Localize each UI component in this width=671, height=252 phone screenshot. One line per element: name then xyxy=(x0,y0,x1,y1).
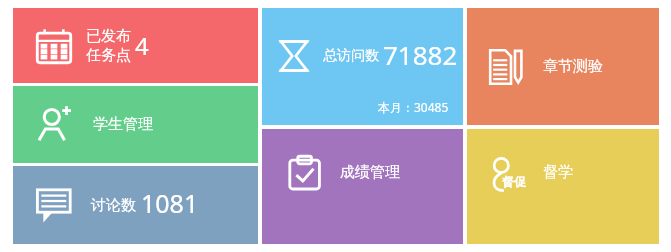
button[interactable]: 章节测验 xyxy=(467,8,659,125)
staticText: 督促 xyxy=(502,174,526,189)
staticText: 总访问数 xyxy=(323,47,379,65)
staticText: 督学 xyxy=(543,163,573,182)
button[interactable]: 成绩管理 xyxy=(262,129,463,244)
staticText: 1081 xyxy=(141,186,199,220)
button[interactable]: 总访问数 71882 本月 30485 xyxy=(262,8,463,125)
staticText: 任务点 xyxy=(86,46,131,65)
staticText: 本月：30485 xyxy=(378,99,449,115)
button[interactable]: 督学 xyxy=(467,129,659,244)
staticText: 已发布 xyxy=(86,27,131,46)
staticText: 成绩管理 xyxy=(340,163,400,182)
button[interactable]: 学生管理 xyxy=(13,86,258,163)
button[interactable]: 讨论数 1081 xyxy=(13,166,258,244)
button[interactable]: 已发布 任务点 4 xyxy=(13,8,258,83)
staticText: 71882 xyxy=(383,37,458,72)
staticText: 章节测验 xyxy=(543,57,603,76)
staticText: 学生管理 xyxy=(93,115,153,134)
staticText: 讨论数 xyxy=(91,196,136,215)
staticText: 4 xyxy=(135,29,149,62)
